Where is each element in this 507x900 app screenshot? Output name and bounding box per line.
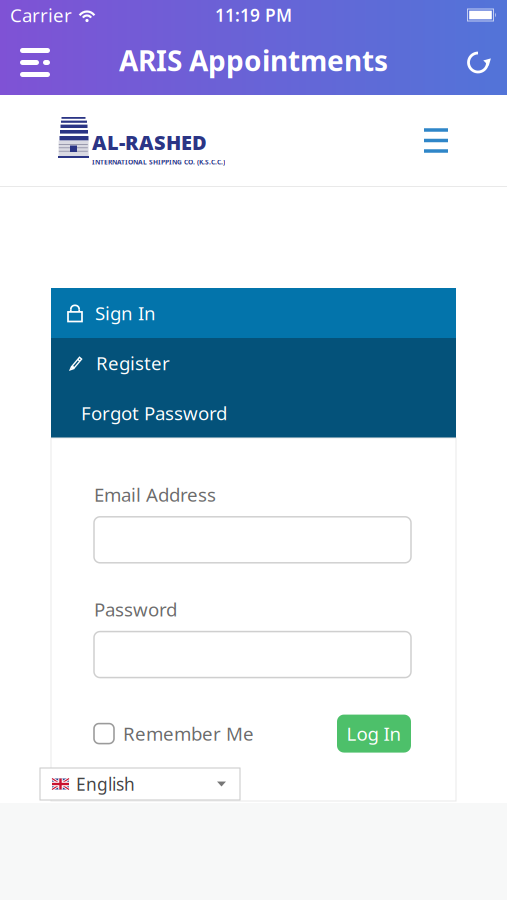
button[interactable]: Sign In (51, 288, 456, 338)
button[interactable]: Language (40, 768, 240, 800)
button[interactable]: Reload (467, 49, 507, 75)
staticText: 11:19 PM (215, 3, 292, 26)
staticText: ARIS Appointments (119, 42, 388, 79)
staticText: Forgot Password (81, 401, 227, 425)
staticText: Remember Me (123, 721, 254, 746)
staticText: AL-RASHED (92, 129, 207, 156)
staticText: Email Address (94, 482, 216, 507)
staticText: Carrier (10, 3, 72, 27)
staticText: INTERNATIONAL SHIPPING CO. (K.S.C.C.) (92, 158, 225, 166)
staticText: Log In (346, 721, 401, 746)
staticText: Register (96, 351, 170, 375)
staticText: English (76, 772, 135, 795)
button[interactable]: Register (51, 338, 456, 388)
button[interactable]: Log In (337, 715, 411, 753)
staticText: Password (94, 597, 177, 622)
button[interactable]: Menu (424, 128, 448, 153)
button[interactable]: Menu (0, 48, 50, 77)
button[interactable]: Forgot Password (51, 388, 456, 438)
button[interactable]: Remember Me (94, 721, 254, 746)
staticText: Sign In (95, 301, 156, 325)
button[interactable]: AL-RASHED home (58, 117, 225, 166)
